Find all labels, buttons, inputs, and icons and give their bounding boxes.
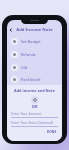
- staticText: Add income and Note: [7, 88, 62, 93]
- button[interactable]: Gift: [7, 61, 62, 74]
- staticText: DONE: [47, 130, 57, 134]
- button[interactable]: Paid Inside: [7, 74, 62, 85]
- button[interactable]: Enter Your Amount: [11, 111, 58, 118]
- button[interactable]: Add photo: [31, 96, 39, 104]
- staticText: INR: [32, 105, 38, 109]
- staticText: Enter Your Note (Optional): [11, 120, 54, 125]
- staticText: Set Budget: [21, 39, 41, 44]
- button[interactable]: Back: [8, 27, 14, 33]
- staticText: Add Income Note: [16, 27, 53, 33]
- button[interactable]: Set Budget: [7, 35, 62, 48]
- button[interactable]: DONE: [46, 129, 58, 135]
- button[interactable]: Refunds: [7, 48, 62, 61]
- button[interactable]: Enter Your Note (Optional): [11, 120, 58, 127]
- staticText: Refunds: [21, 52, 36, 57]
- staticText: Enter Your Amount: [11, 111, 42, 116]
- staticText: Gift: [21, 65, 28, 70]
- staticText: Paid Inside: [21, 77, 41, 82]
